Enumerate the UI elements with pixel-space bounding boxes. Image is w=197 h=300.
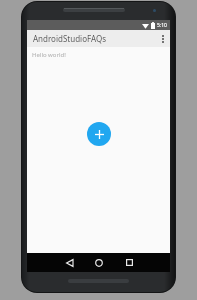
staticText: AndroidStudioFAQs: [33, 33, 107, 44]
button[interactable]: Recent apps: [114, 253, 144, 272]
staticText: Hello world!: [32, 51, 66, 59]
button[interactable]: Back: [54, 253, 84, 272]
staticText: 5:10: [157, 22, 167, 29]
button[interactable]: Add: [87, 122, 111, 146]
button[interactable]: Home: [84, 253, 114, 272]
button[interactable]: More options: [155, 30, 170, 47]
